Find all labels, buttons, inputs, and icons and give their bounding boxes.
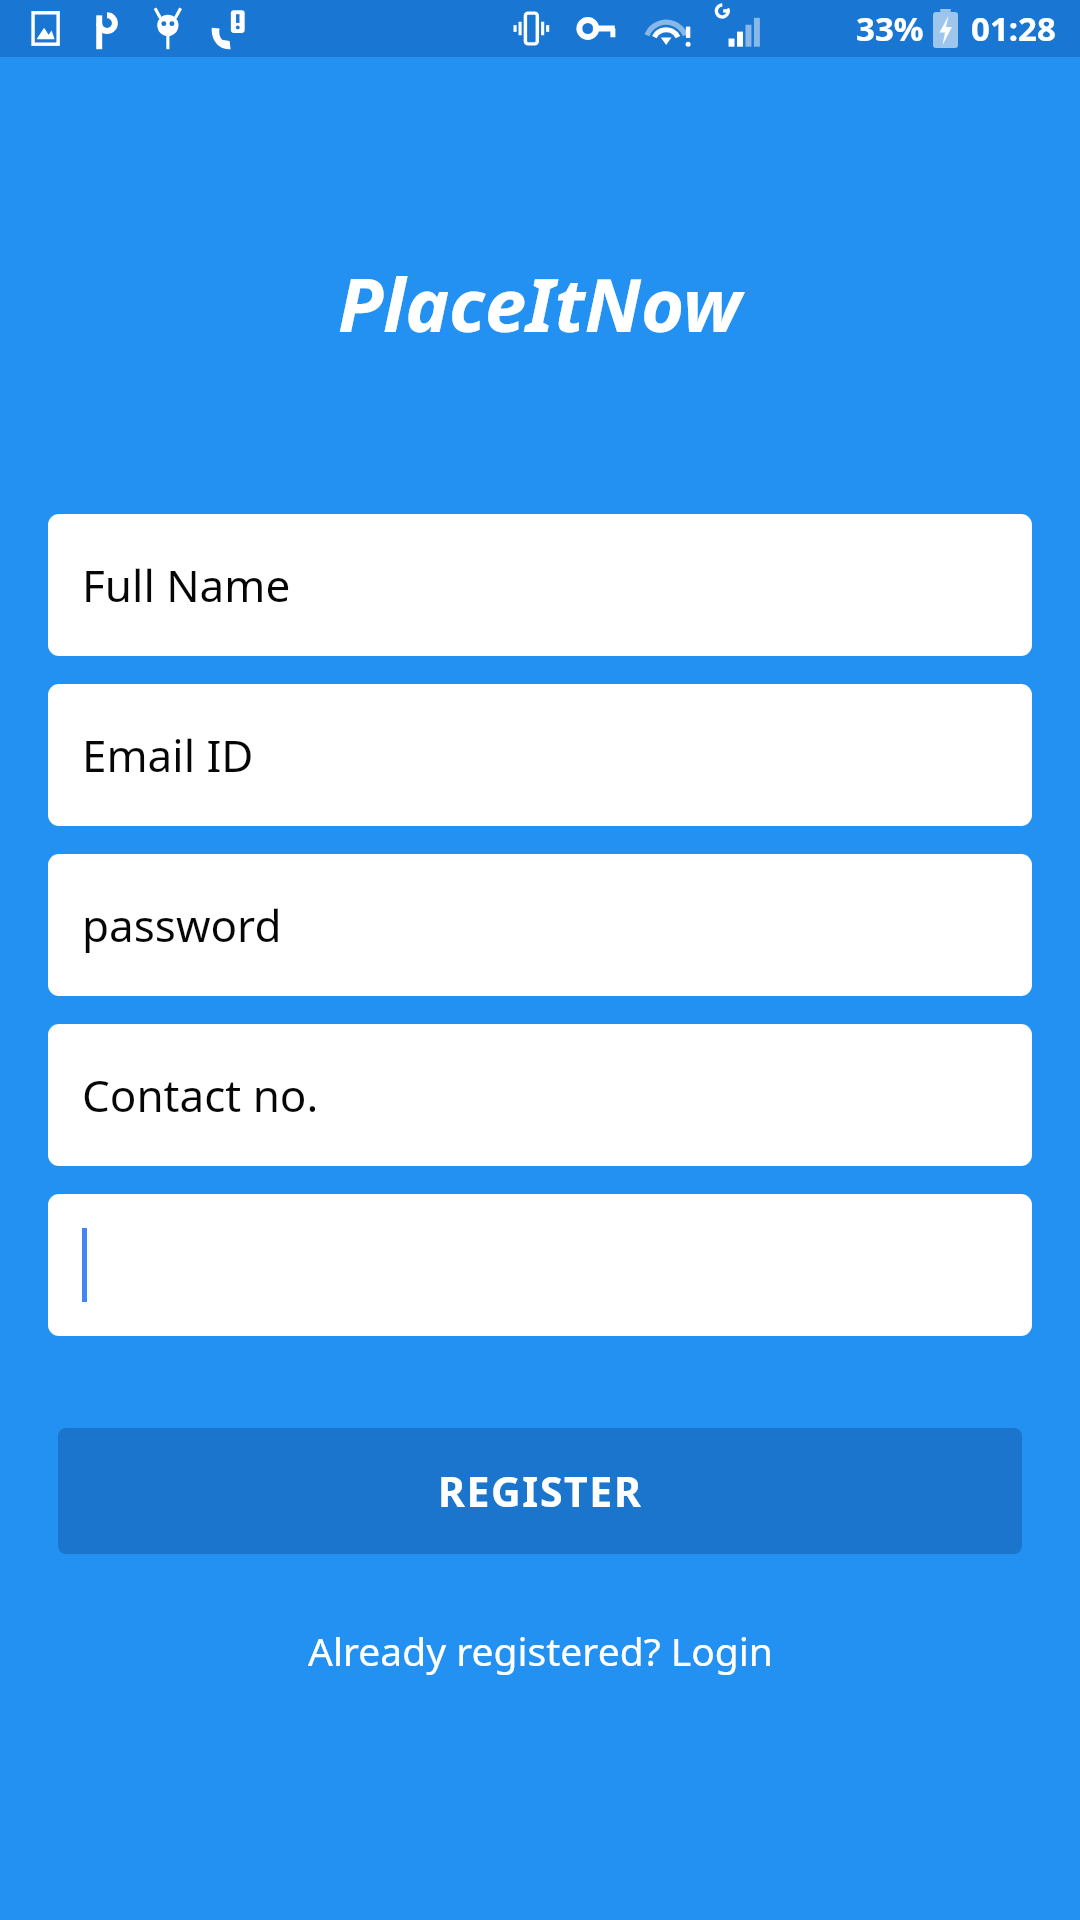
staticText: 01:28 [971,6,1056,51]
staticText: PlaceItNow [338,253,742,354]
button[interactable]: password [48,854,1032,996]
button[interactable]: Full Name [48,514,1032,656]
staticText: REGISTER [438,1463,643,1519]
staticText: Full Name [82,555,291,615]
staticText: Contact no. [82,1065,319,1125]
button[interactable]: Text input field [48,1194,1032,1336]
staticText: password [82,895,282,955]
staticText: Email ID [82,725,254,785]
staticText: Already registered? Login [308,1624,773,1677]
button[interactable]: REGISTER [58,1428,1022,1554]
button[interactable]: Already registered? Login [0,1624,1080,1677]
staticText: 33% [856,6,924,51]
button[interactable]: Email ID [48,684,1032,826]
button[interactable]: Contact no. [48,1024,1032,1166]
